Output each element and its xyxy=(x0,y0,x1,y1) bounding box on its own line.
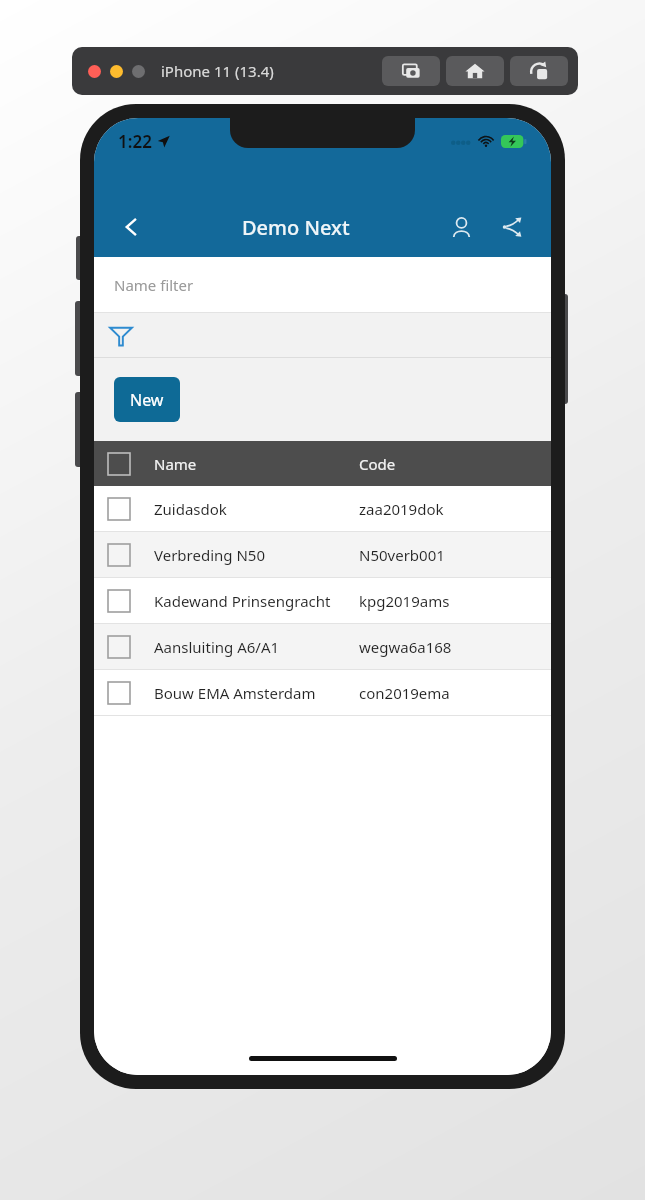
button[interactable]: Screenshot xyxy=(382,56,440,86)
button[interactable]: Name xyxy=(94,441,551,486)
staticText: 1:22 xyxy=(118,130,152,153)
staticText: N50verb001 xyxy=(359,545,445,565)
staticText: Kadewand Prinsengracht xyxy=(154,591,331,611)
staticText: Name xyxy=(154,454,197,474)
staticText: New xyxy=(130,389,164,411)
button[interactable]: Home xyxy=(446,56,504,86)
staticText: Demo Next xyxy=(242,214,350,241)
staticText: wegwa6a168 xyxy=(359,637,452,657)
staticText: zaa2019dok xyxy=(359,499,444,519)
staticText: con2019ema xyxy=(359,683,450,703)
button[interactable]: Rotate xyxy=(510,56,568,86)
button[interactable]: Aansluiting A6/A1 xyxy=(94,624,551,669)
staticText: iPhone 11 (13.4) xyxy=(161,61,274,81)
button[interactable]: Share xyxy=(493,207,533,247)
button[interactable]: Close xyxy=(88,65,101,78)
staticText: kpg2019ams xyxy=(359,591,450,611)
staticText: Zuidasdok xyxy=(154,499,227,519)
button[interactable]: Filter xyxy=(94,313,551,357)
button[interactable]: Account xyxy=(441,207,481,247)
button[interactable]: Verbreding N50 xyxy=(94,532,551,577)
button[interactable]: Zuidasdok xyxy=(94,486,551,531)
button[interactable]: New xyxy=(114,377,180,422)
button[interactable]: Name filter xyxy=(94,257,551,312)
button[interactable]: Minimize xyxy=(110,65,123,78)
staticText: Aansluiting A6/A1 xyxy=(154,637,280,657)
staticText: Bouw EMA Amsterdam xyxy=(154,683,316,703)
button[interactable]: Bouw EMA Amsterdam xyxy=(94,670,551,715)
staticText: Verbreding N50 xyxy=(154,545,265,565)
staticText: Code xyxy=(359,454,396,474)
button[interactable]: Zoom xyxy=(132,65,145,78)
button[interactable]: Kadewand Prinsengracht xyxy=(94,578,551,623)
button[interactable]: Back xyxy=(112,207,152,247)
staticText: Name filter xyxy=(114,275,194,295)
